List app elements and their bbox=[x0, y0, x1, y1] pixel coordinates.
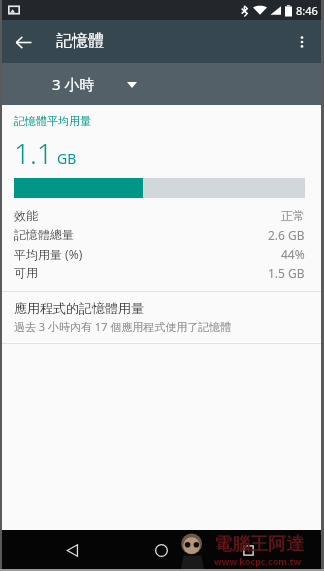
staticText: 過去 3 小時內有 17 個應用程式使用了記憶體 bbox=[14, 319, 232, 334]
button[interactable]: Recent apps bbox=[227, 530, 269, 571]
button[interactable]: More options bbox=[282, 22, 322, 62]
staticText: 記憶體 bbox=[56, 31, 104, 51]
staticText: 可用 bbox=[14, 265, 38, 280]
staticText: 記憶體總量 bbox=[14, 227, 74, 242]
staticText: 44% bbox=[281, 246, 305, 262]
staticText: 3 小時 bbox=[52, 74, 95, 94]
staticText: 正常 bbox=[281, 208, 305, 223]
staticText: 2.6 GB bbox=[268, 227, 305, 243]
staticText: 應用程式的記憶體用量 bbox=[14, 300, 144, 316]
staticText: 1.1 bbox=[14, 134, 53, 172]
button[interactable]: Back bbox=[51, 530, 93, 571]
staticText: 效能 bbox=[14, 208, 38, 223]
staticText: 電腦王阿達 bbox=[214, 533, 304, 556]
staticText: 記憶體平均用量 bbox=[14, 114, 91, 128]
staticText: 平均用量 (%) bbox=[14, 246, 83, 262]
button[interactable]: 應用程式的記憶體用量 bbox=[0, 292, 324, 343]
staticText: 1.5 GB bbox=[268, 265, 305, 281]
staticText: www.kocpc.com.tw bbox=[214, 555, 302, 567]
button[interactable]: 3 小時 bbox=[0, 63, 324, 105]
staticText: 8:46 bbox=[296, 3, 318, 18]
button[interactable]: Home bbox=[140, 530, 182, 571]
button[interactable]: Back bbox=[3, 22, 43, 62]
staticText: GB bbox=[57, 149, 77, 168]
